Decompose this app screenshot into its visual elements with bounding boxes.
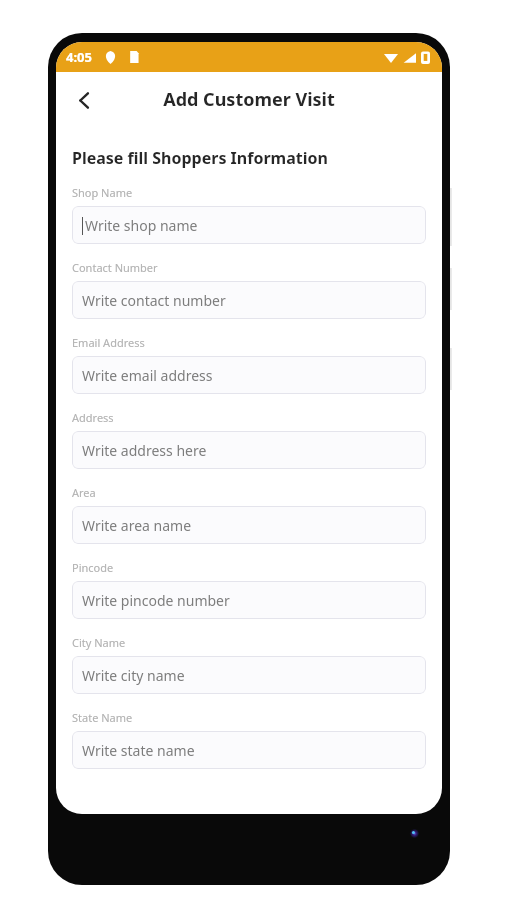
staticText: Contact Number	[72, 260, 158, 275]
staticText: Write email address	[82, 366, 213, 385]
button[interactable]: Write contact number	[72, 281, 426, 319]
staticText: State Name	[72, 710, 133, 725]
staticText: Write address here	[82, 441, 207, 460]
button[interactable]: Write address here	[72, 431, 426, 469]
staticText: Area	[72, 485, 96, 500]
staticText: Email Address	[72, 335, 145, 350]
staticText: City Name	[72, 635, 126, 650]
button[interactable]: Back	[62, 78, 106, 122]
staticText: Shop Name	[72, 185, 133, 200]
staticText: Pincode	[72, 560, 114, 575]
staticText: 4:05	[66, 48, 92, 66]
button[interactable]: Write state name	[72, 731, 426, 769]
staticText: Write state name	[82, 741, 195, 760]
staticText: Address	[72, 410, 114, 425]
staticText: Write city name	[82, 666, 185, 685]
button[interactable]: Write email address	[72, 356, 426, 394]
staticText: Write contact number	[82, 291, 226, 310]
button[interactable]: Write pincode number	[72, 581, 426, 619]
staticText: Write shop name	[85, 216, 198, 235]
button[interactable]: Write city name	[72, 656, 426, 694]
staticText: Write area name	[82, 516, 192, 535]
staticText: Write pincode number	[82, 591, 230, 610]
staticText: Add Customer Visit	[163, 87, 335, 112]
button[interactable]: Write area name	[72, 506, 426, 544]
button[interactable]: Write shop name	[72, 206, 426, 244]
staticText: Please fill Shoppers Information	[72, 147, 328, 169]
